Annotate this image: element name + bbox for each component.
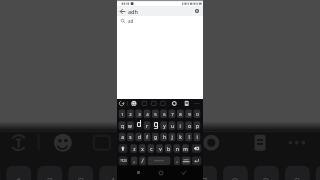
staticText: 8	[231, 173, 239, 180]
staticText: 4	[108, 173, 116, 180]
staticText: ad	[128, 18, 134, 24]
staticText: 0	[293, 173, 301, 180]
staticText: 5	[139, 173, 147, 180]
staticText: w	[128, 123, 132, 130]
staticText: g	[154, 134, 157, 141]
button[interactable]: k	[173, 132, 187, 142]
staticText: r	[146, 123, 148, 130]
staticText: 9	[262, 173, 270, 180]
button[interactable]: Back	[117, 6, 203, 16]
button[interactable]: x	[135, 144, 149, 154]
button[interactable]: Back	[117, 6, 128, 16]
staticText: 6	[163, 111, 166, 117]
staticText: ?123	[120, 159, 127, 163]
staticText: adh	[128, 8, 138, 15]
button[interactable]: a	[115, 132, 129, 142]
button[interactable]: g	[148, 132, 162, 142]
button[interactable]: z	[127, 144, 141, 154]
button[interactable]: j	[165, 132, 179, 142]
staticText: 4	[146, 111, 149, 117]
button[interactable]: Clear search	[190, 6, 203, 16]
button[interactable]: r	[140, 121, 154, 131]
button[interactable]: b	[161, 144, 175, 154]
staticText: m	[183, 146, 188, 153]
button[interactable]: ad	[117, 16, 203, 26]
staticText: p	[196, 123, 199, 130]
button[interactable]: 7	[165, 109, 179, 119]
button[interactable]: Recents	[135, 169, 142, 176]
button[interactable]: 9	[182, 109, 196, 119]
staticText: v	[159, 146, 162, 153]
button[interactable]: 5	[148, 109, 162, 119]
staticText: a	[121, 134, 124, 141]
staticText: 8	[179, 111, 182, 117]
button[interactable]: 1	[115, 109, 129, 119]
staticText: d	[138, 134, 141, 141]
staticText: i	[179, 123, 181, 130]
button[interactable]: 8	[173, 109, 187, 119]
button[interactable]: Back	[180, 169, 187, 176]
staticText: h	[163, 134, 166, 141]
button[interactable]: f	[140, 132, 154, 142]
button[interactable]: n	[170, 144, 184, 154]
button[interactable]: c	[144, 144, 158, 154]
button[interactable]: s	[123, 132, 137, 142]
staticText: d	[136, 118, 142, 129]
staticText: u	[171, 123, 174, 130]
button[interactable]: v	[153, 144, 167, 154]
staticText: l	[188, 134, 190, 141]
staticText: s	[129, 134, 132, 141]
button[interactable]: 0	[190, 109, 204, 119]
staticText: f	[146, 134, 148, 141]
staticText: n	[176, 146, 179, 153]
staticText: 7	[200, 173, 208, 180]
staticText: y	[163, 123, 166, 130]
button[interactable]: w	[123, 121, 137, 131]
staticText: x	[141, 146, 144, 153]
staticText: 3	[77, 173, 85, 180]
button[interactable]: 6	[157, 109, 171, 119]
staticText: 1	[121, 111, 124, 117]
button[interactable]: 4	[140, 109, 154, 119]
button[interactable]: p	[190, 121, 204, 131]
staticText: c	[150, 146, 153, 153]
button[interactable]: o	[182, 121, 196, 131]
staticText: i	[196, 134, 198, 141]
staticText: q	[121, 123, 124, 130]
staticText: z	[133, 146, 136, 153]
staticText: k	[179, 134, 182, 141]
staticText: 2	[129, 111, 132, 117]
staticText: 5	[154, 111, 157, 117]
staticText: 1	[15, 173, 23, 180]
button[interactable]: q	[115, 121, 129, 131]
button[interactable]: 2	[123, 109, 137, 119]
button[interactable]: Home	[157, 169, 164, 176]
button[interactable]: d	[132, 132, 146, 142]
staticText: 2	[46, 173, 54, 180]
button[interactable]: 3	[132, 109, 146, 119]
button[interactable]: l	[182, 132, 196, 142]
button[interactable]: i	[173, 121, 187, 131]
staticText: 3	[138, 111, 141, 117]
staticText: j	[171, 134, 173, 141]
staticText: b	[167, 146, 170, 153]
button[interactable]: u	[165, 121, 179, 131]
button[interactable]: m	[178, 144, 192, 154]
button[interactable]: y	[157, 121, 171, 131]
staticText: o	[188, 123, 191, 130]
button[interactable]: i	[190, 132, 204, 142]
staticText: 7	[171, 111, 174, 117]
button[interactable]: h	[157, 132, 171, 142]
staticText: 0	[196, 111, 199, 117]
staticText: g	[153, 118, 159, 129]
button[interactable]: ?123	[116, 156, 130, 166]
staticText: 9	[188, 111, 191, 117]
